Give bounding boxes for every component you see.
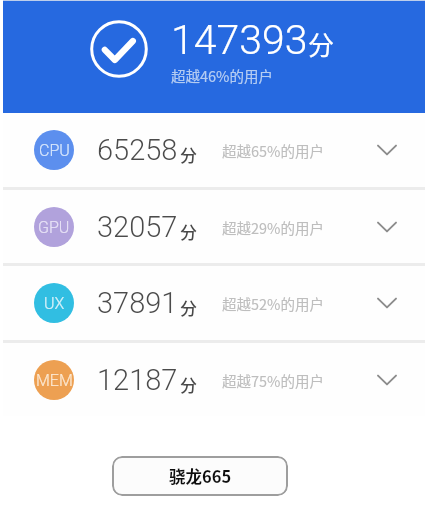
staticText: 32057 <box>97 210 178 244</box>
button[interactable]: CPU <box>0 113 425 187</box>
button[interactable]: Expand <box>367 360 407 400</box>
staticText: 超越75%的用户 <box>222 370 324 391</box>
button[interactable]: Expand <box>367 130 407 170</box>
staticText: MEM <box>36 371 73 390</box>
button[interactable]: UX <box>0 266 425 340</box>
staticText: UX <box>44 294 65 313</box>
staticText: 65258 <box>97 133 178 167</box>
staticText: 分 <box>180 372 197 397</box>
staticText: 超越52%的用户 <box>222 293 324 314</box>
staticText: 骁龙665 <box>169 464 232 488</box>
staticText: 分 <box>180 142 197 167</box>
staticText: 12187 <box>97 363 178 397</box>
button[interactable]: Expand <box>367 283 407 323</box>
staticText: 分 <box>180 295 197 320</box>
button[interactable]: GPU <box>0 190 425 264</box>
button[interactable]: MEM <box>0 343 425 417</box>
button[interactable]: Expand <box>367 207 407 247</box>
staticText: 147393 <box>171 16 308 64</box>
button[interactable]: 骁龙665 <box>112 456 288 496</box>
staticText: 37891 <box>97 286 178 320</box>
staticText: 分 <box>308 25 335 63</box>
staticText: 超越29%的用户 <box>222 217 324 238</box>
staticText: GPU <box>38 218 70 237</box>
staticText: 超越46%的用户 <box>171 65 273 86</box>
staticText: 分 <box>180 219 197 244</box>
staticText: CPU <box>39 141 70 160</box>
staticText: 超越65%的用户 <box>222 140 324 161</box>
